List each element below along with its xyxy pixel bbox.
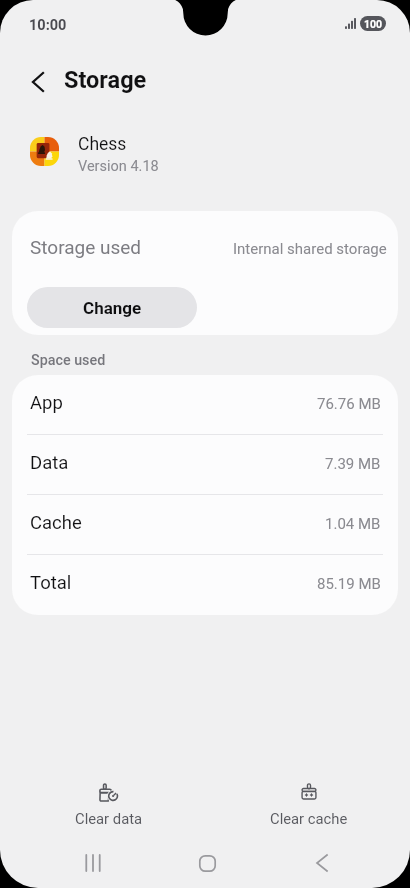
staticText: Change — [83, 298, 142, 318]
button[interactable]: Clear cache — [257, 777, 361, 835]
staticText: Clear cache — [270, 810, 348, 827]
button[interactable]: Recent apps — [67, 838, 118, 888]
staticText: Version 4.18 — [78, 158, 159, 175]
staticText: 10:00 — [29, 17, 67, 34]
staticText: Chess — [78, 134, 127, 155]
staticText: Cache — [30, 512, 82, 534]
staticText: App — [30, 392, 63, 414]
staticText: Storage used — [30, 236, 142, 258]
button[interactable]: Change — [27, 287, 197, 328]
staticText: Space used — [31, 352, 106, 369]
button[interactable]: Data — [12, 435, 398, 495]
staticText: Storage — [64, 66, 147, 94]
button[interactable]: Total — [12, 555, 398, 615]
staticText: 100 — [364, 18, 383, 30]
staticText: Internal shared storage — [233, 240, 387, 258]
button[interactable]: Cache — [12, 495, 398, 555]
staticText: 76.76 MB — [317, 395, 381, 413]
button[interactable]: Back — [297, 838, 347, 888]
staticText: 85.19 MB — [317, 575, 381, 593]
staticText: Clear data — [75, 810, 143, 827]
staticText: 1.04 MB — [325, 515, 381, 533]
staticText: 7.39 MB — [325, 455, 381, 473]
staticText: Data — [30, 452, 69, 474]
staticText: Total — [30, 572, 72, 594]
button[interactable]: Clear data — [59, 777, 159, 835]
button[interactable]: App — [12, 375, 398, 435]
button[interactable]: Home — [182, 838, 232, 888]
button[interactable]: Back — [17, 61, 58, 102]
